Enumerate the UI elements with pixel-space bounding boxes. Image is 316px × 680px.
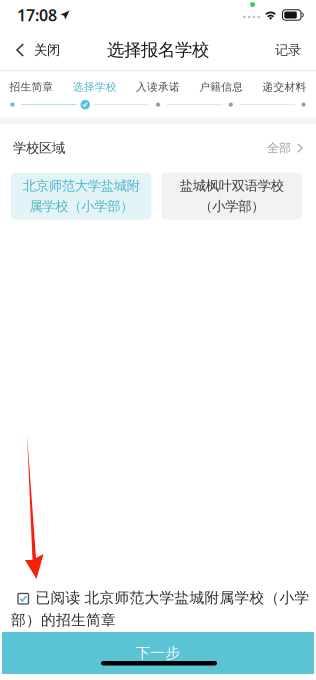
staticText: 17:08 <box>17 4 57 26</box>
staticText: 已阅读 北京师范大学盐城附属学校（小学 <box>35 589 309 608</box>
staticText: 部）的招生简章 <box>11 611 116 629</box>
staticText: 属学校（小学部） <box>29 198 133 214</box>
staticText: 学校区域 <box>13 140 65 156</box>
staticText: 选择报名学校 <box>107 39 209 61</box>
button[interactable]: 盐城枫叶双语学校 <box>161 173 302 220</box>
staticText: 全部 <box>267 141 291 155</box>
button[interactable]: 已阅读 北京师范大学盐城附属学校（小学 <box>0 589 316 629</box>
button[interactable]: 关闭 <box>0 30 70 70</box>
staticText: 递交材料 <box>262 80 306 94</box>
button[interactable]: 北京师范大学盐城附 <box>11 173 151 220</box>
staticText: 盐城枫叶双语学校 <box>180 178 284 194</box>
staticText: 关闭 <box>34 42 60 58</box>
button[interactable]: 记录 <box>265 30 316 70</box>
staticText: 选择学校 <box>73 80 117 94</box>
staticText: 记录 <box>275 42 301 58</box>
staticText: 北京师范大学盐城附 <box>23 178 140 194</box>
staticText: 招生简章 <box>10 80 54 94</box>
button[interactable]: 全部 <box>267 132 303 164</box>
staticText: 入读承诺 <box>136 80 180 94</box>
button[interactable]: 下一步 <box>2 632 314 674</box>
staticText: （小学部） <box>199 198 264 214</box>
staticText: 户籍信息 <box>199 80 243 94</box>
staticText: 下一步 <box>135 644 180 662</box>
